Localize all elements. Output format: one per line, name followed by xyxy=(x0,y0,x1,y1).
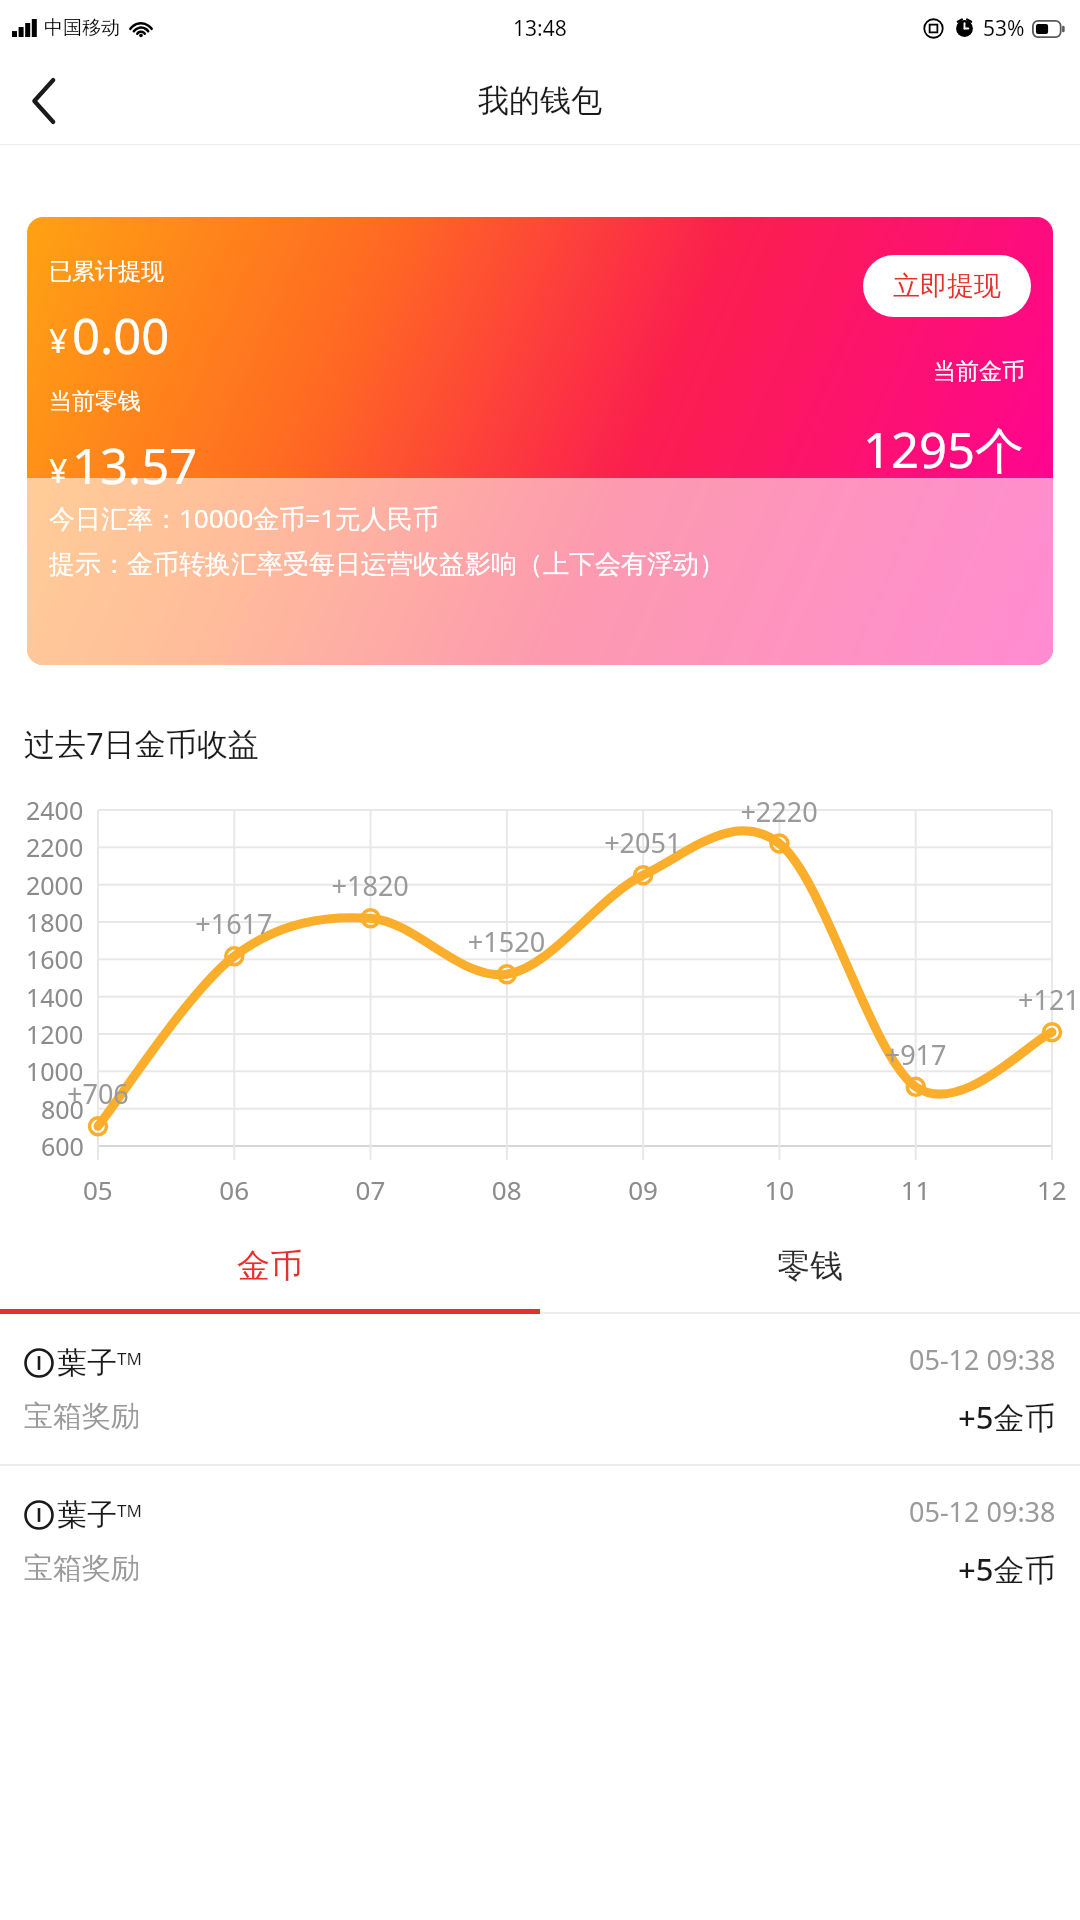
staticText: 13:48 xyxy=(513,14,567,43)
staticText: 53% xyxy=(983,14,1025,43)
staticText: TM xyxy=(117,1347,142,1370)
staticText: ¥ xyxy=(49,319,68,363)
button[interactable]: Back xyxy=(0,57,88,145)
staticText: 宝箱奖励 xyxy=(24,1398,140,1435)
staticText: +5金币 xyxy=(958,1548,1056,1590)
staticText: +5金币 xyxy=(958,1396,1056,1438)
staticText: TM xyxy=(117,1499,142,1522)
staticText: 过去7日金币收益 xyxy=(24,722,259,764)
staticText: 0.00 xyxy=(72,302,170,369)
staticText: 已累计提现 xyxy=(49,257,164,286)
staticText: 1295个 xyxy=(863,416,1025,483)
staticText: 13.57 xyxy=(72,432,198,499)
button[interactable]: 立即提现 xyxy=(863,255,1031,317)
staticText: 金币 xyxy=(237,1245,303,1287)
staticText: 05-12 09:38 xyxy=(909,1493,1056,1530)
staticText: 05-12 09:38 xyxy=(909,1341,1056,1378)
staticText: ¥ xyxy=(49,449,68,493)
button[interactable]: 零钱 xyxy=(540,1218,1080,1314)
staticText: 提示：金币转换汇率受每日运营收益影响（上下会有浮动） xyxy=(49,548,725,581)
staticText: 宝箱奖励 xyxy=(24,1550,140,1587)
staticText: 当前金币 xyxy=(933,357,1025,386)
staticText: 今日汇率：10000金币=1元人民币 xyxy=(49,500,440,536)
staticText: 葉子 xyxy=(57,1496,117,1534)
staticText: 我的钱包 xyxy=(478,81,602,120)
button[interactable]: 葉子 xyxy=(0,1466,1080,1616)
staticText: 立即提现 xyxy=(893,269,1001,303)
staticText: 中国移动 xyxy=(44,16,120,40)
staticText: 当前零钱 xyxy=(49,387,141,416)
button[interactable]: 金币 xyxy=(0,1218,540,1314)
button[interactable]: 葉子 xyxy=(0,1314,1080,1464)
staticText: 零钱 xyxy=(777,1245,843,1287)
staticText: 葉子 xyxy=(57,1344,117,1382)
